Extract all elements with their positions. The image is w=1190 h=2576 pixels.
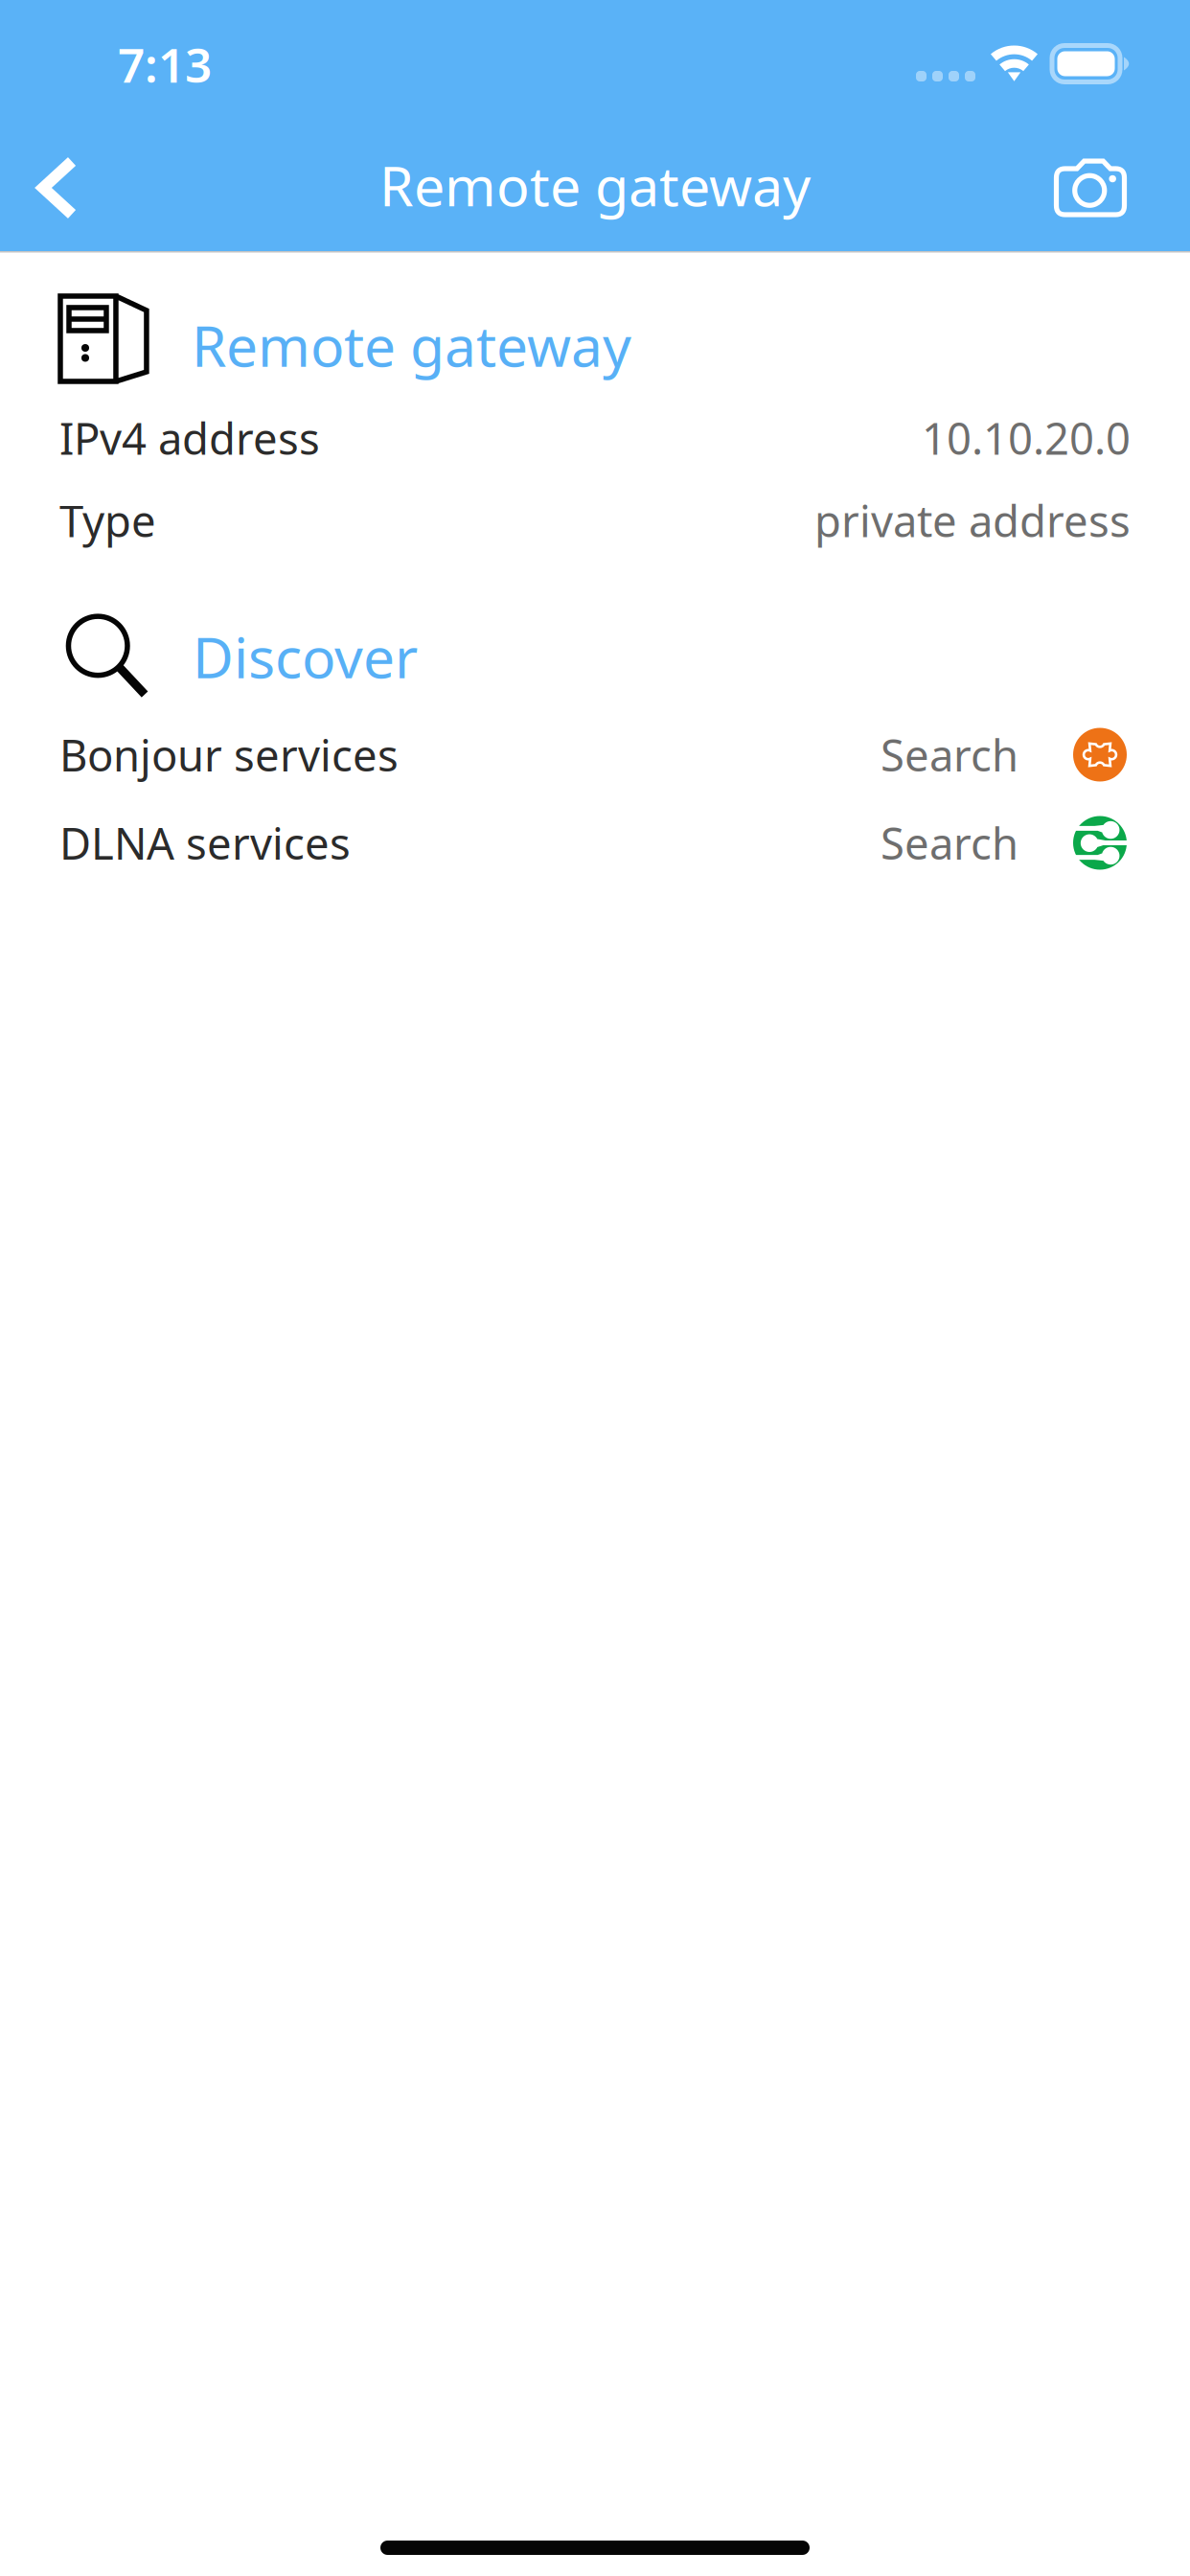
staticText: Remote gateway [379, 148, 811, 221]
staticText: 7:13 [118, 33, 212, 96]
staticText: IPv4 address [59, 409, 320, 467]
staticText: Bonjour services [59, 726, 399, 784]
button[interactable]: Camera [1016, 120, 1190, 246]
staticText: DLNA services [59, 814, 351, 872]
button[interactable]: Bonjour services [0, 705, 1190, 793]
staticText: Type [59, 492, 156, 549]
staticText: private address [814, 492, 1131, 549]
staticText: Search [881, 726, 1018, 784]
staticText: Remote gateway [192, 308, 631, 382]
button[interactable]: Back [0, 120, 115, 246]
button[interactable]: DLNA services [0, 793, 1190, 882]
staticText: 10.10.20.0 [922, 409, 1131, 467]
staticText: Search [881, 814, 1018, 872]
staticText: Discover [193, 619, 418, 694]
